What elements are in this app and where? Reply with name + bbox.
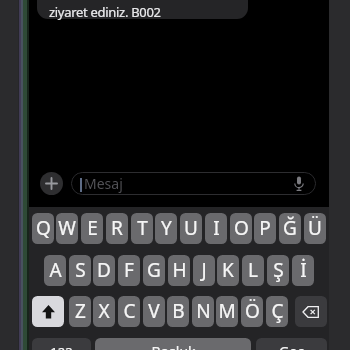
- button[interactable]: I: [205, 213, 227, 244]
- button[interactable]: Ü: [304, 213, 326, 244]
- staticText: U: [184, 215, 198, 241]
- staticText: W: [58, 215, 76, 241]
- button[interactable]: N: [192, 296, 214, 327]
- staticText: Y: [161, 215, 172, 241]
- button[interactable]: Ş: [267, 255, 289, 286]
- button[interactable]: Y: [155, 213, 177, 244]
- button[interactable]: [32, 296, 64, 327]
- button[interactable]: X: [93, 296, 115, 327]
- button[interactable]: F: [118, 255, 140, 286]
- staticText: Z: [75, 298, 86, 324]
- button[interactable]: D: [93, 255, 115, 286]
- staticText: S: [75, 257, 86, 283]
- staticText: Ö: [245, 298, 260, 324]
- staticText: N: [196, 298, 211, 324]
- button[interactable]: İ: [292, 255, 314, 286]
- button[interactable]: W: [56, 213, 78, 244]
- button[interactable]: R: [106, 213, 128, 244]
- button[interactable]: Ç: [266, 296, 288, 327]
- staticText: M: [218, 298, 236, 324]
- staticText: Mesaj: [84, 174, 123, 193]
- staticText: V: [148, 298, 160, 324]
- button[interactable]: C: [118, 296, 140, 327]
- staticText: J: [201, 257, 207, 283]
- button[interactable]: B: [167, 296, 189, 327]
- staticText: Boşluk: [151, 342, 196, 350]
- staticText: L: [248, 257, 258, 283]
- button[interactable]: O: [230, 213, 252, 244]
- button[interactable]: V: [143, 296, 165, 327]
- staticText: O: [234, 215, 249, 241]
- button[interactable]: S: [69, 255, 91, 286]
- staticText: X: [98, 298, 110, 324]
- staticText: Ş: [273, 257, 284, 283]
- button[interactable]: J: [193, 255, 215, 286]
- staticText: Q: [36, 215, 51, 241]
- button[interactable]: L: [242, 255, 264, 286]
- staticText: G: [147, 257, 161, 283]
- staticText: H: [172, 257, 187, 283]
- staticText: K: [222, 257, 234, 283]
- button[interactable]: U: [180, 213, 202, 244]
- staticText: C: [123, 298, 136, 324]
- staticText: ziyaret ediniz. B002: [49, 3, 161, 21]
- staticText: Ç: [271, 298, 284, 324]
- staticText: A: [49, 257, 62, 283]
- staticText: F: [124, 257, 134, 283]
- staticText: R: [111, 215, 123, 241]
- button[interactable]: G: [143, 255, 165, 286]
- button[interactable]: Ö: [241, 296, 263, 327]
- staticText: T: [137, 215, 148, 241]
- button[interactable]: E: [81, 213, 103, 244]
- button[interactable]: H: [168, 255, 190, 286]
- button[interactable]: Boşluk: [95, 338, 251, 350]
- button[interactable]: M: [216, 296, 238, 327]
- staticText: Ğ: [283, 215, 297, 241]
- button[interactable]: Geç: [256, 338, 327, 350]
- button[interactable]: P: [254, 213, 276, 244]
- staticText: 123: [50, 343, 73, 350]
- staticText: Ü: [308, 215, 322, 241]
- button[interactable]: A: [44, 255, 66, 286]
- button[interactable]: Z: [69, 296, 91, 327]
- button[interactable]: Ğ: [279, 213, 301, 244]
- staticText: P: [259, 215, 271, 241]
- button[interactable]: 123: [32, 338, 91, 350]
- button[interactable]: T: [131, 213, 153, 244]
- staticText: Geç: [279, 342, 304, 350]
- button[interactable]: Mesaj: [71, 172, 316, 195]
- button[interactable]: [295, 296, 327, 327]
- staticText: İ: [300, 257, 307, 283]
- button[interactable]: Q: [32, 213, 54, 244]
- staticText: B: [172, 298, 185, 324]
- staticText: D: [97, 257, 111, 283]
- staticText: E: [87, 215, 98, 241]
- staticText: I: [213, 215, 220, 241]
- button[interactable]: K: [217, 255, 239, 286]
- button[interactable]: [40, 172, 63, 195]
